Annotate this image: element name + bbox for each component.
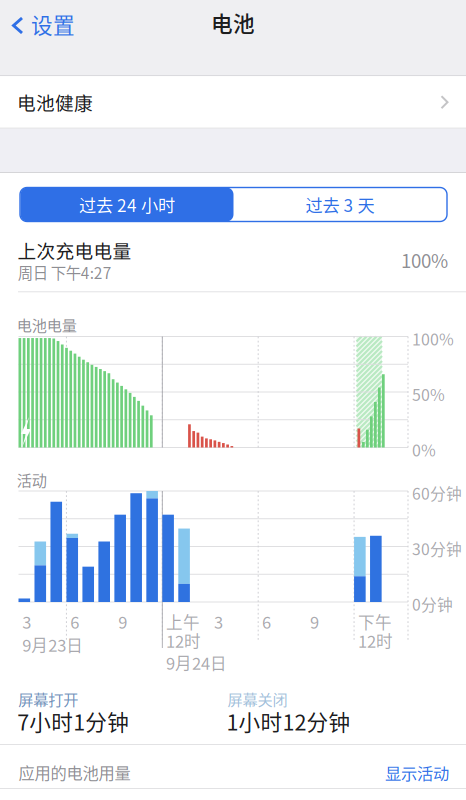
staticText: 0分钟 xyxy=(412,592,453,615)
staticText: 9月23日 xyxy=(22,632,83,656)
button[interactable]: 设置 xyxy=(0,0,89,48)
staticText: 6 xyxy=(70,609,79,633)
staticText: 电池健康 xyxy=(17,89,93,116)
staticText: 0% xyxy=(412,438,436,461)
button[interactable]: 电池健康 xyxy=(0,76,466,128)
staticText: 周日 下午4:27 xyxy=(18,261,112,283)
staticText: 30分钟 xyxy=(412,537,462,560)
staticText: 100% xyxy=(412,327,454,350)
staticText: 12时 xyxy=(358,628,393,652)
staticText: 电池 xyxy=(211,7,255,38)
staticText: 12时 xyxy=(166,628,201,652)
staticText: 屏幕打开 xyxy=(18,688,78,710)
staticText: 9 xyxy=(118,609,127,633)
staticText: 9月24日 xyxy=(166,650,227,674)
staticText: 应用的电池用量 xyxy=(19,760,131,784)
staticText: 7小时1分钟 xyxy=(17,705,129,737)
button[interactable]: 显示活动 xyxy=(377,755,457,791)
staticText: 上次充电电量 xyxy=(18,237,132,264)
staticText: 下午 xyxy=(358,609,392,633)
button[interactable]: 过去 24 小时 xyxy=(20,187,233,221)
staticText: 设置 xyxy=(31,8,75,40)
staticText: 1小时12分钟 xyxy=(226,705,350,737)
staticText: 9 xyxy=(310,609,319,633)
staticText: 电池电量 xyxy=(17,313,77,335)
staticText: 显示活动 xyxy=(385,761,449,785)
button[interactable]: 过去 3 天 xyxy=(233,187,446,221)
staticText: 过去 24 小时 xyxy=(79,192,175,217)
staticText: 50% xyxy=(412,382,445,406)
staticText: 活动 xyxy=(17,468,47,490)
staticText: 100% xyxy=(401,246,448,273)
staticText: 3 xyxy=(214,609,223,633)
staticText: 3 xyxy=(22,609,31,633)
staticText: 60分钟 xyxy=(412,481,462,504)
staticText: 上午 xyxy=(166,609,200,633)
staticText: 屏幕关闭 xyxy=(227,688,287,710)
staticText: 过去 3 天 xyxy=(305,192,374,217)
staticText: 6 xyxy=(262,609,271,633)
